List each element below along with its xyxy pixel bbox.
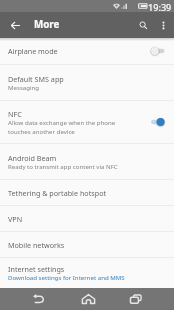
staticText: VPN: [8, 214, 23, 224]
button[interactable]: Mobile networks: [0, 232, 174, 258]
staticText: Messaging: [8, 83, 40, 91]
staticText: 19:39: [148, 1, 172, 13]
staticText: More: [34, 18, 60, 31]
button[interactable]: Internet settings: [0, 258, 174, 288]
button[interactable]: Home: [68, 288, 108, 310]
button[interactable]: VPN: [0, 206, 174, 232]
staticText: Internet settings: [8, 264, 65, 274]
staticText: touches another device: [8, 127, 75, 135]
staticText: Airplane mode: [8, 46, 58, 56]
button[interactable]: Recents: [116, 288, 156, 310]
button[interactable]: Tethering & portable hotspot: [0, 180, 174, 206]
button[interactable]: NFC on: [151, 116, 165, 128]
button[interactable]: More options: [152, 12, 174, 38]
button[interactable]: Android Beam: [0, 144, 174, 180]
staticText: Tethering & portable hotspot: [8, 188, 107, 198]
button[interactable]: Search: [134, 12, 152, 38]
staticText: Allow data exchange when the phone: [8, 118, 116, 126]
button[interactable]: Airplane mode off: [151, 45, 165, 57]
staticText: Mobile networks: [8, 240, 65, 250]
button[interactable]: Default SMS app: [0, 65, 174, 101]
staticText: Default SMS app: [8, 74, 64, 84]
button[interactable]: NFC: [0, 101, 174, 144]
button[interactable]: Airplane mode: [0, 38, 174, 65]
button[interactable]: Back: [0, 12, 31, 38]
staticText: Android Beam: [8, 153, 57, 163]
button[interactable]: Back: [18, 288, 58, 310]
staticText: NFC: [8, 109, 22, 119]
staticText: Ready to transmit app content via NFC: [8, 162, 118, 170]
staticText: Download settings for Internet and MMS: [8, 273, 125, 281]
